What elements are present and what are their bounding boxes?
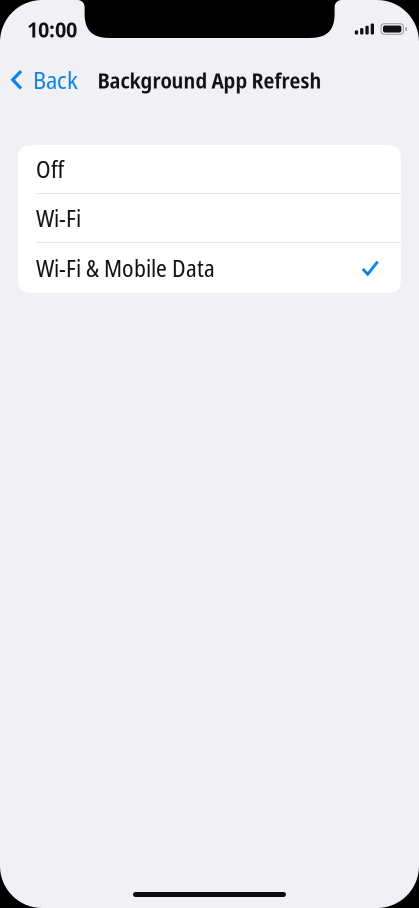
staticText: Background App Refresh bbox=[97, 65, 321, 95]
button[interactable]: Back bbox=[0, 58, 90, 102]
staticText: Off bbox=[36, 153, 64, 185]
button[interactable]: Wi-Fi & Mobile Data bbox=[18, 243, 401, 293]
staticText: Wi-Fi & Mobile Data bbox=[36, 252, 215, 284]
staticText: Wi-Fi bbox=[36, 202, 81, 234]
staticText: 10:00 bbox=[27, 14, 77, 44]
button[interactable]: Wi-Fi bbox=[18, 194, 401, 243]
button[interactable]: Off bbox=[18, 145, 401, 194]
staticText: Back bbox=[33, 64, 78, 96]
